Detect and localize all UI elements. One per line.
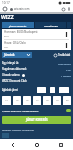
button[interactable]: Egy irányú út bbox=[2, 60, 71, 66]
button[interactable]: 19 bbox=[53, 96, 61, 105]
staticText: 20 bbox=[66, 99, 69, 102]
staticText: 1 felnőtt bbox=[61, 74, 71, 77]
button[interactable]: JÁRAT KERESÉS bbox=[2, 116, 71, 124]
button[interactable]: Hova: OSL/Oslo bbox=[2, 40, 71, 50]
button[interactable]: Repjegy foglalás szabályzat bbox=[2, 128, 34, 131]
staticText: Rugalmas dátumok bbox=[2, 67, 27, 71]
button[interactable]: Rugalmas dátumok bbox=[2, 66, 71, 72]
staticText: JÁRAT KERESÉS bbox=[26, 118, 48, 122]
button[interactable]: JÁRAT KERESÉS bbox=[2, 22, 34, 28]
staticText: wizzair.com bbox=[14, 7, 60, 11]
button[interactable] bbox=[59, 87, 69, 93]
button[interactable]: Home bbox=[25, 139, 49, 150]
staticText: 2 fő bbox=[66, 68, 71, 71]
staticText: UTAZÁSAIM bbox=[44, 24, 58, 27]
staticText: WIZZ bbox=[1, 14, 14, 21]
staticText: OSL bbox=[4, 46, 9, 49]
button[interactable]: Nyitott dátumok megjelenítése bbox=[2, 107, 71, 113]
staticText: 16 bbox=[26, 99, 29, 102]
button[interactable]: Járatok bbox=[2, 52, 32, 58]
button[interactable]: Site information bbox=[8, 6, 14, 12]
button[interactable]: 15 bbox=[13, 96, 21, 105]
staticText: Oda-vissza bbox=[58, 62, 71, 65]
staticText: Hova: OSL/Oslo bbox=[4, 41, 26, 45]
staticText: Járatok bbox=[4, 53, 15, 57]
staticText: 14 bbox=[5, 99, 8, 102]
button[interactable] bbox=[50, 87, 55, 93]
button[interactable]: 20 bbox=[63, 96, 71, 105]
staticText: WIZZ Discount Club bbox=[2, 79, 27, 83]
button[interactable]: Honnan: BUD/Budapest bbox=[2, 29, 71, 39]
button[interactable]: 18 bbox=[43, 96, 51, 105]
staticText: Egy irányú út bbox=[2, 61, 19, 65]
button[interactable]: Utasok száma bbox=[2, 72, 71, 78]
button[interactable]: UTAZÁSAIM bbox=[35, 22, 66, 28]
staticText: JÁRAT KERESÉS bbox=[9, 24, 27, 27]
staticText: 18 bbox=[46, 99, 49, 102]
button[interactable]: Reload page bbox=[60, 6, 66, 12]
staticText: 15 bbox=[16, 99, 19, 102]
button[interactable]: Tabs bbox=[1, 5, 8, 12]
staticText: Utasok száma bbox=[2, 73, 20, 77]
staticText: Ajánlott járat bbox=[2, 88, 18, 92]
button[interactable]: 16 bbox=[23, 96, 31, 105]
button[interactable]: Back bbox=[0, 139, 25, 150]
staticText: 17 bbox=[36, 99, 39, 102]
staticText: BUD bbox=[4, 35, 9, 38]
staticText: 19 bbox=[56, 99, 59, 102]
button[interactable]: 14 bbox=[2, 96, 11, 105]
button[interactable] bbox=[37, 87, 46, 93]
staticText: Honnan: BUD/Budapest bbox=[4, 30, 38, 34]
staticText: Nyitott dátumok megjelenítése bbox=[2, 109, 39, 112]
button[interactable]: More options bbox=[66, 6, 72, 12]
staticText: Továbbiak bbox=[58, 53, 71, 57]
button[interactable]: Továbbiak bbox=[54, 53, 71, 57]
staticText: 10:17 bbox=[2, 1, 10, 5]
button[interactable]: Recent apps bbox=[49, 139, 73, 150]
button[interactable]: 17 bbox=[33, 96, 41, 105]
button[interactable]: WIZZ Discount Club bbox=[2, 78, 71, 84]
